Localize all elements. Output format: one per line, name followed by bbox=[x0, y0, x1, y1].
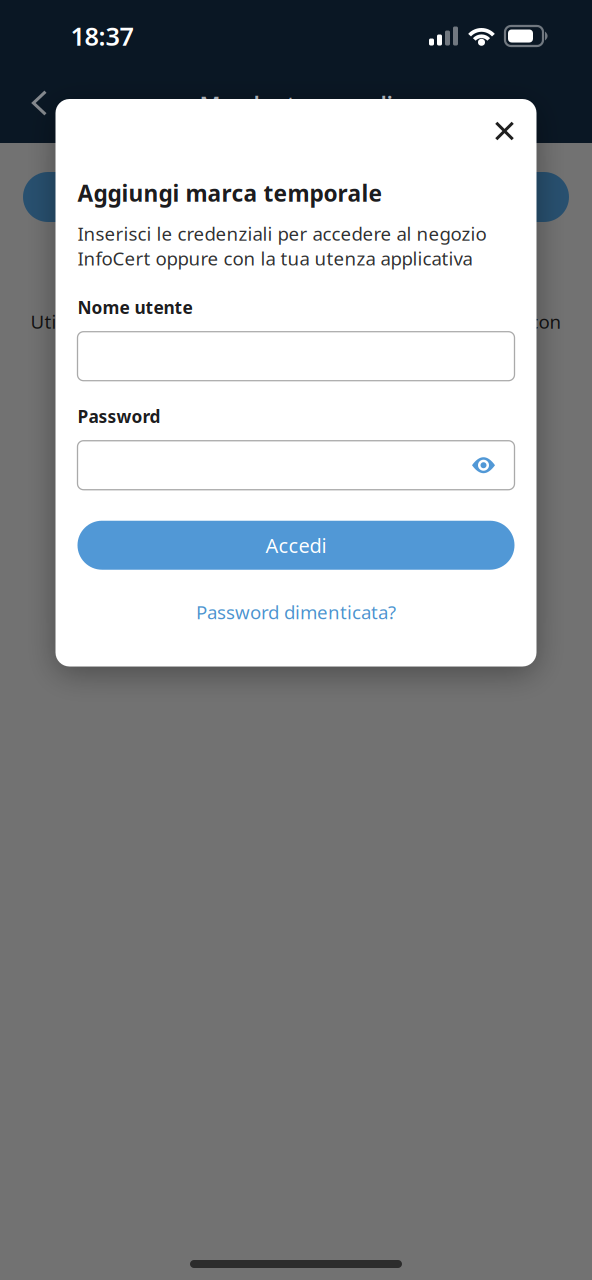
button[interactable]: Password dimenticata? bbox=[77, 600, 514, 624]
staticText: Inserisci le credenziali per accedere al… bbox=[77, 221, 486, 271]
button[interactable]: Indietro bbox=[14, 78, 64, 128]
staticText: Password bbox=[77, 405, 160, 428]
staticText: Aggiungi marca temporale bbox=[77, 178, 382, 208]
staticText: Utilizza le tue marche temporali per fir… bbox=[30, 309, 561, 334]
staticText: Accedi bbox=[265, 532, 326, 558]
staticText: Nome utente bbox=[77, 296, 192, 319]
button[interactable]: Chiudi bbox=[482, 109, 526, 153]
staticText: Marche temporali bbox=[199, 90, 392, 120]
button[interactable]: Accedi bbox=[77, 521, 514, 570]
button[interactable]: Mostra password bbox=[461, 443, 505, 487]
staticText: Password dimenticata? bbox=[196, 600, 396, 624]
staticText: 18:37 bbox=[70, 19, 133, 53]
